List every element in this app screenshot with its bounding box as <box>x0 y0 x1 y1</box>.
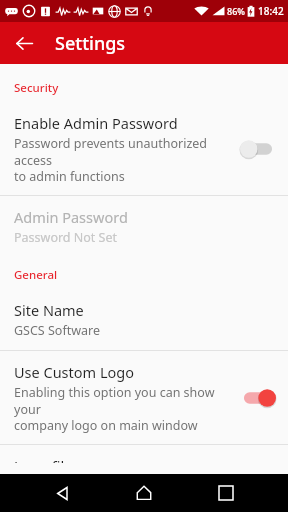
staticText: 86% <box>227 5 245 17</box>
staticText: Use Custom Logo <box>14 362 134 382</box>
button[interactable]: Enable Admin Password <box>0 102 288 195</box>
staticText: Admin Password <box>14 207 128 227</box>
button[interactable]: Toggle on <box>240 387 276 409</box>
staticText: Password Not Set <box>14 229 118 246</box>
staticText: Site Name <box>14 300 84 320</box>
staticText: GSCS Software <box>14 322 101 339</box>
staticText: Enable Admin Password <box>14 113 178 133</box>
button[interactable]: Use Custom Logo <box>0 351 288 444</box>
button[interactable]: Admin Password <box>0 196 288 257</box>
button[interactable]: Logo filename <box>0 445 288 474</box>
button[interactable]: Site Name <box>0 289 288 350</box>
staticText: General <box>14 267 58 283</box>
staticText: Security <box>14 80 59 96</box>
button[interactable]: Recent apps <box>206 474 246 512</box>
staticText: Enabling this option you can show your c… <box>14 384 234 433</box>
button[interactable]: Toggle off <box>240 138 276 160</box>
button[interactable]: Back <box>42 474 82 512</box>
staticText: Logo filename <box>14 456 112 463</box>
staticText: Settings <box>55 31 126 56</box>
button[interactable]: Back <box>8 27 40 59</box>
staticText: 18:42 <box>258 4 284 18</box>
staticText: Password prevents unauthorized access to… <box>14 135 234 184</box>
button[interactable]: Home <box>124 474 164 512</box>
